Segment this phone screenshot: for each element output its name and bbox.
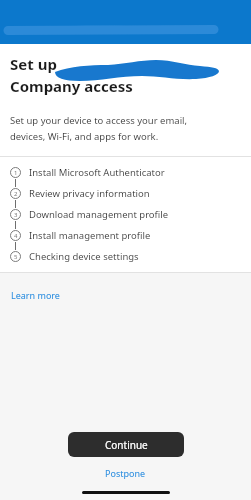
- staticText: 1: [14, 169, 18, 177]
- staticText: Install management profile: [29, 229, 151, 242]
- staticText: 3: [14, 211, 18, 219]
- staticText: Set up: [10, 54, 57, 74]
- button[interactable]: 1: [0, 166, 251, 179]
- staticText: Review privacy information: [29, 187, 150, 200]
- button[interactable]: Continue: [68, 432, 184, 457]
- staticText: 2: [14, 190, 18, 198]
- staticText: 5: [14, 253, 18, 261]
- staticText: 4: [14, 232, 18, 240]
- staticText: Postpone: [105, 467, 146, 479]
- staticText: Continue: [105, 438, 148, 452]
- button[interactable]: Learn more: [10, 287, 61, 303]
- staticText: Download management profile: [29, 208, 169, 221]
- button[interactable]: 4: [0, 229, 251, 242]
- button[interactable]: 5: [0, 250, 251, 263]
- button[interactable]: 3: [0, 208, 251, 221]
- staticText: Install Microsoft Authenticator: [29, 166, 165, 179]
- staticText: Learn more: [11, 289, 60, 301]
- button[interactable]: 2: [0, 187, 251, 200]
- button[interactable]: Postpone: [101, 465, 150, 481]
- staticText: Company access: [10, 76, 133, 96]
- staticText: Set up your device to access your email,: [10, 114, 188, 127]
- staticText: devices, Wi-Fi, and apps for work.: [10, 130, 159, 143]
- staticText: Checking device settings: [29, 250, 139, 263]
